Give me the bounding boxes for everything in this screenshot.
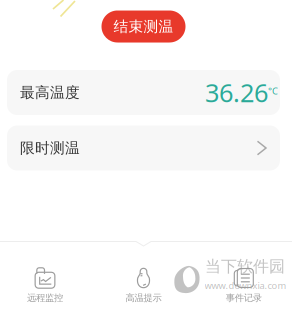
staticText: 高温提示 (125, 292, 161, 304)
staticText: 远程监控 (27, 292, 63, 304)
staticText: 结束测温 (113, 17, 173, 35)
button[interactable]: 结束测温 (101, 10, 185, 42)
staticText: °C (268, 85, 278, 97)
button[interactable]: 高温提示 (101, 260, 185, 308)
staticText: 最高温度 (20, 83, 80, 101)
staticText: 36.26 (205, 76, 268, 109)
button[interactable]: 限时测温 (7, 125, 280, 170)
staticText: 当下软件园 (205, 257, 285, 276)
staticText: www.downxia.com (204, 279, 286, 292)
button[interactable]: 事件记录 (202, 260, 286, 308)
staticText: 事件记录 (226, 292, 262, 304)
staticText: 限时测温 (20, 139, 80, 157)
button[interactable]: 远程监控 (3, 260, 87, 308)
